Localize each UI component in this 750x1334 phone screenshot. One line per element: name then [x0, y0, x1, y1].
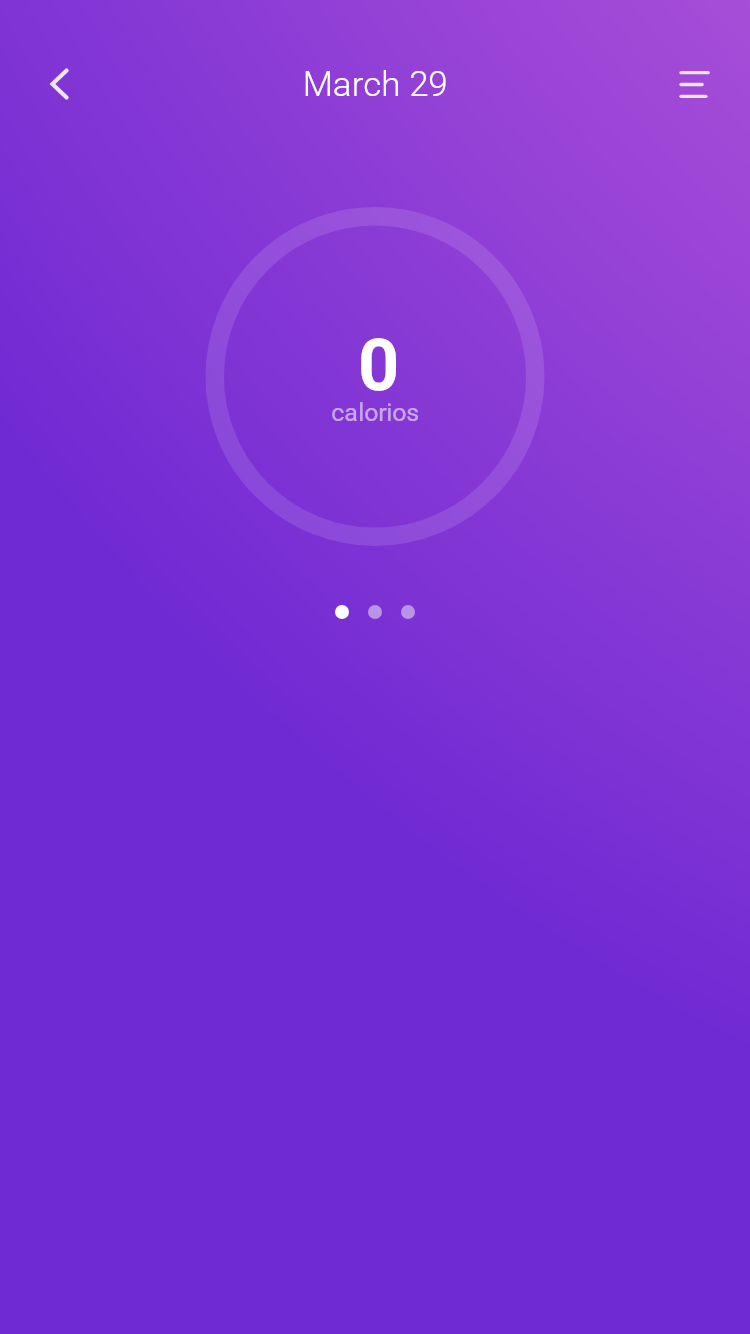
- button[interactable]: Page 3 of 3: [401, 605, 415, 619]
- button[interactable]: March 29: [295, 54, 455, 114]
- button[interactable]: Menu: [666, 54, 726, 114]
- button[interactable]: Page 1 of 3, selected: [335, 605, 349, 619]
- button[interactable]: Page 2 of 3: [368, 605, 382, 619]
- button[interactable]: Back: [24, 49, 94, 119]
